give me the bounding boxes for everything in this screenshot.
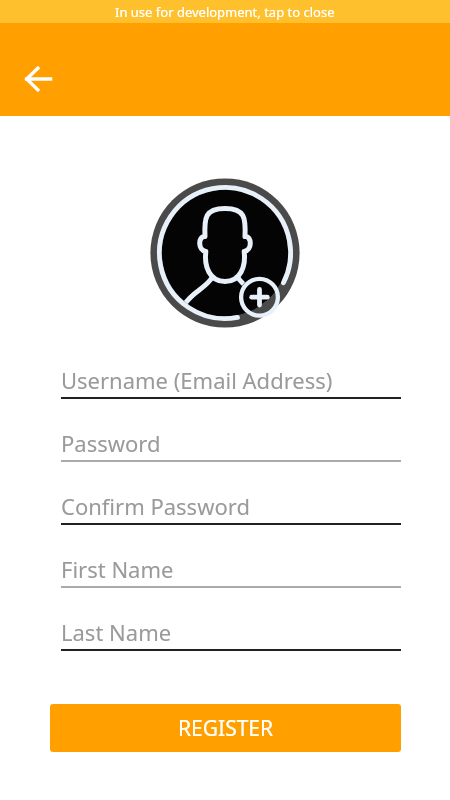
staticText: Confirm Password xyxy=(61,491,250,521)
button[interactable]: Back xyxy=(14,55,62,103)
staticText: REGISTER xyxy=(178,714,274,743)
staticText: Password xyxy=(61,428,161,458)
staticText: First Name xyxy=(61,554,174,584)
staticText: Last Name xyxy=(61,617,172,647)
staticText: In use for development, tap to close xyxy=(115,3,335,21)
staticText: Username (Email Address) xyxy=(61,365,333,395)
button[interactable]: REGISTER xyxy=(50,704,401,752)
button[interactable]: In use for development, tap to close xyxy=(0,0,450,23)
